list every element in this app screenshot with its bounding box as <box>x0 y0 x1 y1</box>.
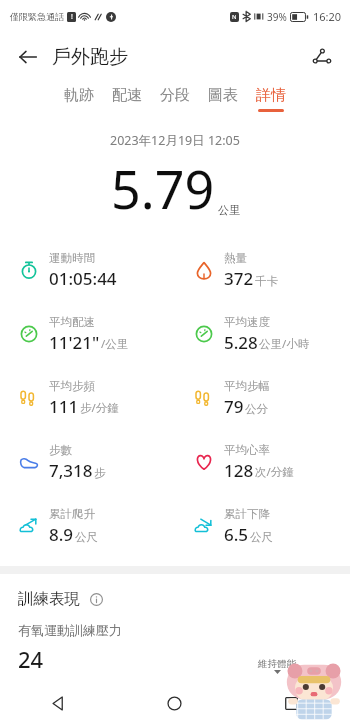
staticText: 79 <box>224 395 244 418</box>
staticText: 次/分鐘 <box>255 464 294 480</box>
staticText: 11'21" <box>49 331 100 354</box>
button[interactable]: 軌跡 <box>64 82 94 116</box>
button[interactable]: 平均步頻 <box>0 366 175 430</box>
button[interactable]: 熱量 <box>175 238 350 302</box>
staticText: 詳情 <box>256 86 286 105</box>
staticText: 平均步幅 <box>224 379 270 393</box>
button[interactable]: 步數 <box>0 430 175 494</box>
staticText: 步 <box>94 466 106 480</box>
button[interactable]: 累計下降 <box>175 494 350 558</box>
staticText: 公分 <box>245 402 268 416</box>
staticText: 16:20 <box>313 9 342 24</box>
button[interactable]: 平均心率 <box>175 430 350 494</box>
button[interactable]: Home <box>116 681 233 725</box>
button[interactable]: 平均配速 <box>0 302 175 366</box>
button[interactable]: 分段 <box>160 82 190 116</box>
button[interactable]: 配速 <box>112 82 142 116</box>
staticText: 公尺 <box>250 530 273 544</box>
staticText: 圖表 <box>208 86 238 105</box>
button[interactable]: 平均步幅 <box>175 366 350 430</box>
staticText: 軌跡 <box>64 86 94 105</box>
button[interactable]: Recents <box>233 681 350 725</box>
staticText: ! <box>71 12 73 22</box>
staticText: 運動時間 <box>49 251 95 265</box>
button[interactable]: 詳情 <box>256 82 286 116</box>
staticText: 步/分鐘 <box>80 400 119 416</box>
staticText: 平均速度 <box>224 315 270 329</box>
staticText: 6.5 <box>224 523 249 546</box>
staticText: 公里/小時 <box>259 336 310 352</box>
staticText: 128 <box>224 459 254 482</box>
button[interactable]: Back <box>0 681 116 725</box>
staticText: 7,318 <box>49 459 93 482</box>
staticText: 平均心率 <box>224 443 270 457</box>
staticText: 01:05:44 <box>49 267 117 290</box>
staticText: 公尺 <box>75 530 98 544</box>
button[interactable]: Share <box>302 37 342 77</box>
staticText: 111 <box>49 395 79 418</box>
staticText: 配速 <box>112 86 142 105</box>
staticText: 分段 <box>160 86 190 105</box>
staticText: 戶外跑步 <box>52 45 128 69</box>
staticText: 372 <box>224 267 254 290</box>
staticText: 訓練表現 <box>18 589 80 609</box>
staticText: 維持體能 <box>258 658 296 670</box>
button[interactable]: Back <box>8 37 48 77</box>
staticText: 平均配速 <box>49 315 95 329</box>
staticText: N <box>232 13 237 21</box>
staticText: 5.79 <box>111 153 215 224</box>
staticText: 24 <box>18 644 44 674</box>
button[interactable]: 圖表 <box>208 82 238 116</box>
staticText: 有氧運動訓練壓力 <box>18 622 122 638</box>
staticText: 2023年12月19日 12:05 <box>110 132 240 149</box>
staticText: 千卡 <box>255 274 278 288</box>
staticText: 熱量 <box>224 251 247 265</box>
staticText: 累計下降 <box>224 507 270 521</box>
staticText: 39% <box>267 10 287 24</box>
button[interactable]: 累計爬升 <box>0 494 175 558</box>
staticText: 5.28 <box>224 331 258 354</box>
button[interactable]: 運動時間 <box>0 238 175 302</box>
staticText: /公里 <box>101 336 129 352</box>
staticText: 平均步頻 <box>49 379 95 393</box>
button[interactable]: 平均速度 <box>175 302 350 366</box>
staticText: 8.9 <box>49 523 74 546</box>
button[interactable]: Info <box>85 588 107 610</box>
staticText: 步數 <box>49 443 72 457</box>
staticText: 累計爬升 <box>49 507 95 521</box>
staticText: 公里 <box>218 203 240 217</box>
staticText: 僅限緊急通話 <box>10 11 64 22</box>
